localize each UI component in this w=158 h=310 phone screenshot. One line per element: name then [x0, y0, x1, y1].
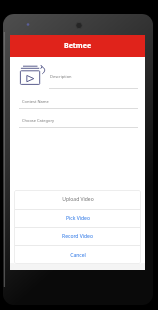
button[interactable]: Record Video [14, 228, 141, 245]
staticText: Choose Category [22, 118, 55, 123]
staticText: Betmee [64, 41, 92, 51]
staticText: Cancel [70, 252, 86, 259]
button[interactable]: Betmee [10, 35, 145, 57]
staticText: Contest Name [22, 99, 49, 104]
staticText: Upload Video [62, 196, 94, 203]
staticText: Description [50, 74, 72, 79]
button[interactable]: Pick Video [14, 210, 141, 227]
staticText: Pick Video [66, 215, 90, 222]
button[interactable]: Upload video [20, 64, 47, 86]
other: Upload video [20, 64, 47, 86]
staticText: Record Video [62, 233, 93, 240]
button[interactable]: Cancel [14, 246, 141, 264]
